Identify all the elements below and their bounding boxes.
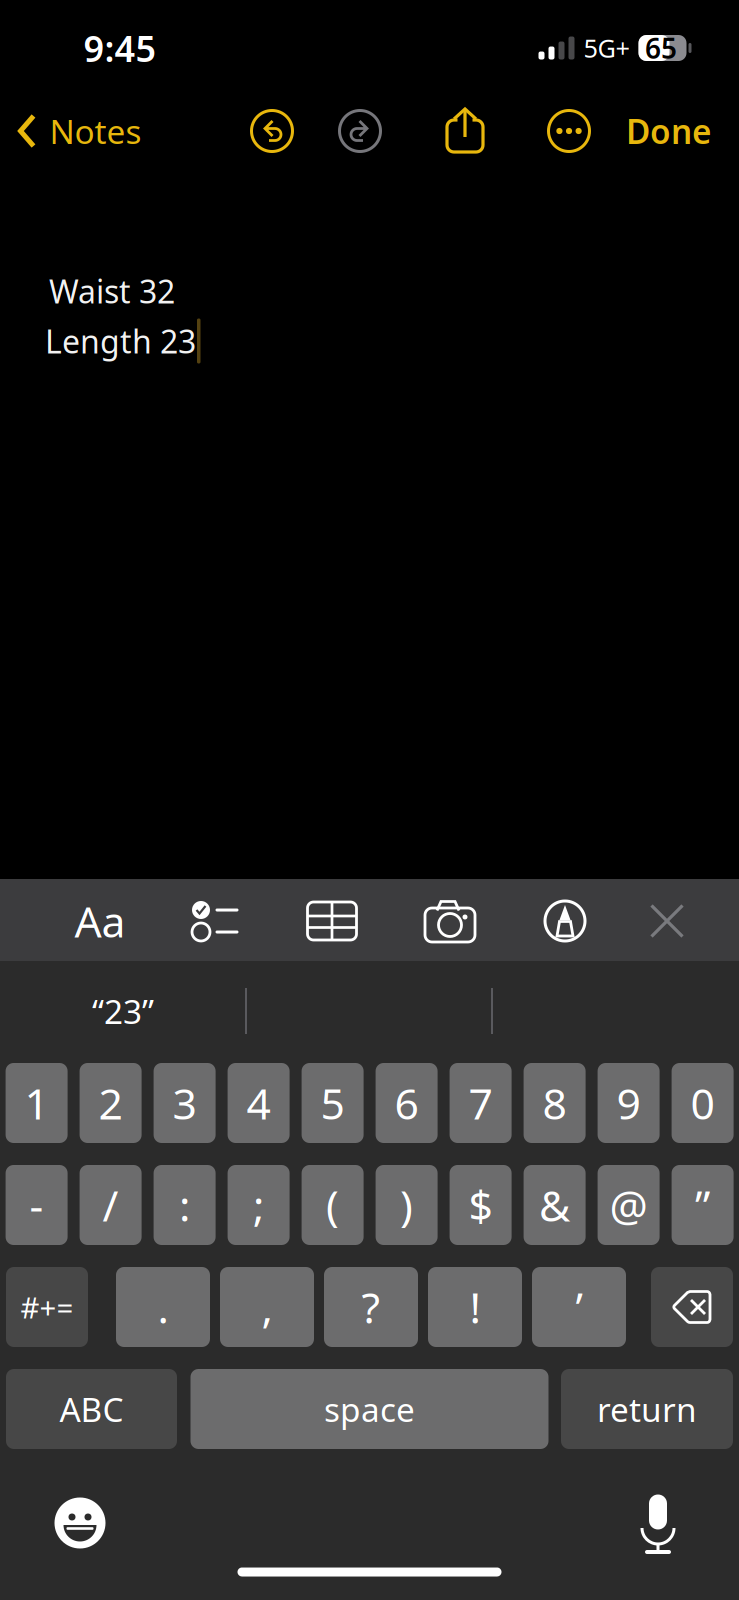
staticText: 4 — [247, 1075, 271, 1131]
button[interactable]: Hide keyboard — [649, 903, 684, 938]
button[interactable]: return — [561, 1369, 733, 1449]
staticText: ) — [400, 1177, 413, 1233]
button[interactable]: 4 — [228, 1063, 290, 1143]
button[interactable]: ’ — [532, 1267, 626, 1347]
button[interactable]: Delete — [651, 1267, 733, 1347]
staticText: “23” — [92, 989, 154, 1033]
staticText: $ — [469, 1177, 493, 1233]
button[interactable]: 6 — [376, 1063, 438, 1143]
staticText: Length 23 — [45, 320, 196, 362]
staticText: ; — [253, 1177, 264, 1233]
button[interactable]: Notes — [16, 100, 141, 162]
button[interactable]: Done — [614, 100, 724, 162]
staticText: 5 — [321, 1075, 345, 1131]
staticText: & — [539, 1177, 570, 1233]
button[interactable]: 3 — [154, 1063, 216, 1143]
button[interactable]: 8 — [524, 1063, 586, 1143]
button[interactable]: 7 — [450, 1063, 512, 1143]
staticText: Done — [626, 109, 712, 153]
button[interactable]: ABC — [6, 1369, 177, 1449]
staticText: return — [597, 1387, 697, 1431]
button[interactable]: $ — [450, 1165, 512, 1245]
staticText: 3 — [173, 1075, 197, 1131]
button[interactable]: Emoji keyboard — [44, 1487, 116, 1559]
button[interactable]: Table — [307, 901, 357, 941]
button[interactable]: Redo — [336, 107, 384, 155]
staticText: 2 — [99, 1075, 123, 1131]
button[interactable]: 9 — [598, 1063, 660, 1143]
staticText: 65 — [645, 29, 677, 67]
staticText: Notes — [49, 109, 141, 153]
staticText: 0 — [691, 1075, 715, 1131]
staticText: Aa — [74, 893, 125, 949]
staticText: ! — [469, 1279, 480, 1335]
button[interactable]: 0 — [672, 1063, 734, 1143]
button[interactable]: Share — [441, 107, 489, 159]
staticText: 6 — [395, 1075, 419, 1131]
button[interactable]: ( — [302, 1165, 364, 1245]
button[interactable]: Markup — [543, 899, 587, 943]
button[interactable]: ; — [228, 1165, 290, 1245]
button[interactable]: ! — [428, 1267, 522, 1347]
button[interactable]: 1 — [6, 1063, 68, 1143]
staticText: space — [324, 1387, 415, 1431]
staticText: ABC — [59, 1387, 123, 1431]
button[interactable]: ” — [672, 1165, 734, 1245]
button[interactable]: 2 — [80, 1063, 142, 1143]
staticText: : — [179, 1177, 190, 1233]
button[interactable]: / — [80, 1165, 142, 1245]
button[interactable]: Camera — [424, 899, 476, 943]
staticText: - — [30, 1177, 44, 1233]
button[interactable]: space — [190, 1369, 548, 1449]
staticText: Waist 32 — [49, 270, 175, 312]
staticText: ( — [326, 1177, 339, 1233]
staticText: 5G+ — [583, 31, 629, 65]
button[interactable]: #+= — [6, 1267, 88, 1347]
staticText: . — [157, 1279, 168, 1335]
button[interactable]: ) — [376, 1165, 438, 1245]
staticText: , — [261, 1279, 272, 1335]
staticText: / — [103, 1177, 119, 1233]
button[interactable]: : — [154, 1165, 216, 1245]
staticText: ” — [695, 1177, 710, 1233]
button[interactable]: 5 — [302, 1063, 364, 1143]
button[interactable]: Checklist — [191, 900, 239, 942]
button[interactable]: - — [6, 1165, 68, 1245]
button[interactable]: @ — [598, 1165, 660, 1245]
staticText: 9:45 — [83, 24, 156, 72]
staticText: ? — [361, 1279, 380, 1335]
button[interactable]: Undo — [248, 107, 296, 155]
button[interactable]: ? — [324, 1267, 418, 1347]
staticText: 7 — [469, 1075, 493, 1131]
button[interactable]: , — [220, 1267, 314, 1347]
staticText: 9 — [617, 1075, 641, 1131]
button[interactable]: More options — [545, 107, 593, 155]
button[interactable]: Text format — [63, 890, 137, 952]
staticText: @ — [610, 1177, 648, 1233]
staticText: 8 — [543, 1075, 567, 1131]
button[interactable]: Dictation — [622, 1487, 694, 1559]
staticText: #+= — [20, 1287, 73, 1326]
button[interactable]: & — [524, 1165, 586, 1245]
staticText: ’ — [575, 1279, 582, 1335]
staticText: 1 — [25, 1075, 49, 1131]
button[interactable]: . — [116, 1267, 210, 1347]
